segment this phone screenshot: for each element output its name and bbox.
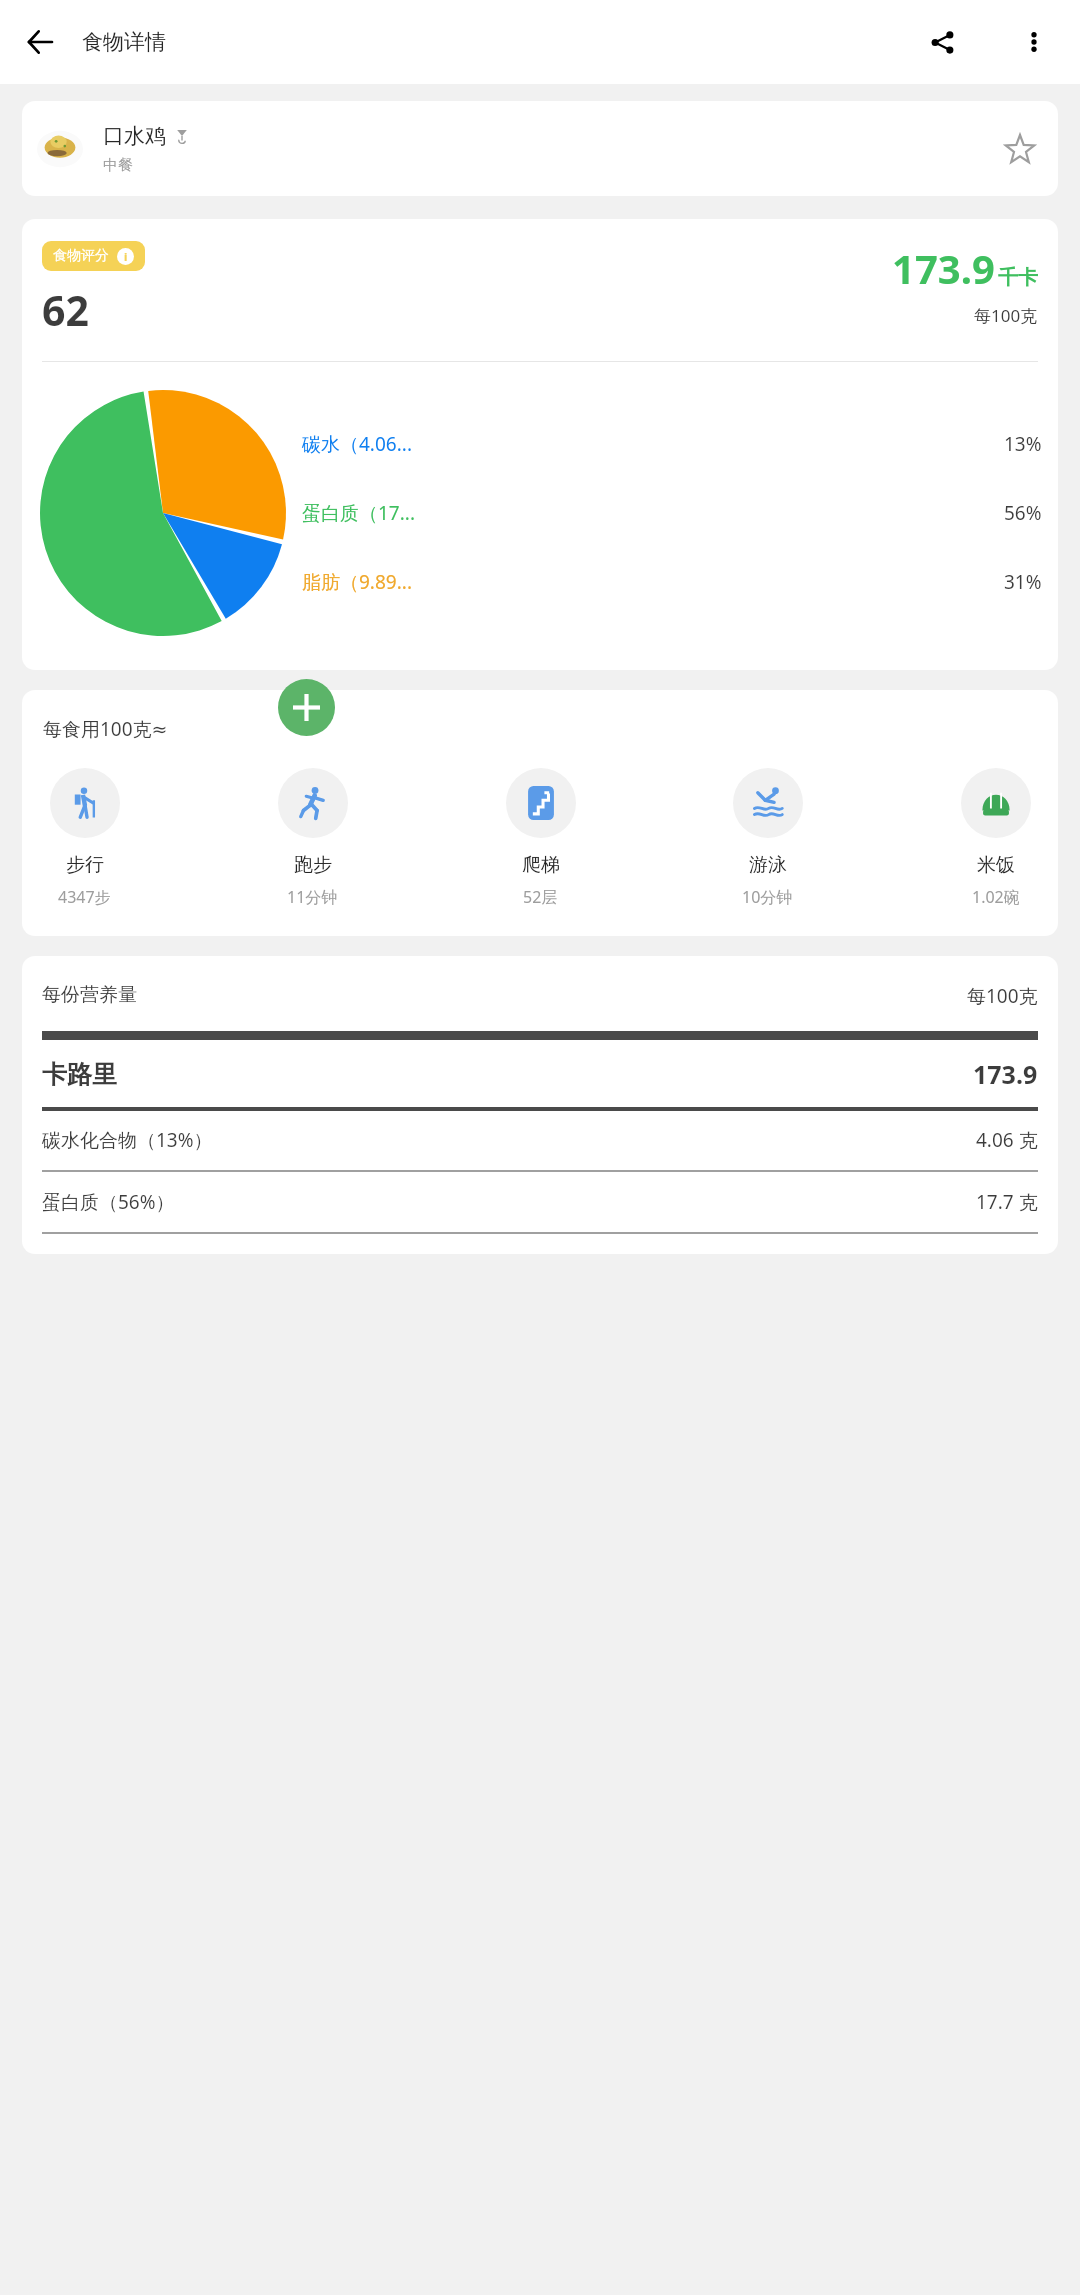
staticText: 食物评分 xyxy=(53,247,109,265)
staticText: 4347步 xyxy=(58,886,111,908)
staticText: 每食用100克≈ xyxy=(43,716,168,742)
button[interactable]: 每份营养量 xyxy=(22,956,1058,1254)
staticText: 步行 xyxy=(66,853,104,877)
staticText: 卡路里 xyxy=(42,1059,973,1090)
button[interactable]: More options xyxy=(1006,14,1062,70)
staticText: 10分钟 xyxy=(742,886,793,908)
button[interactable]: Back xyxy=(12,14,68,70)
staticText: 千卡 xyxy=(998,265,1038,290)
staticText: 口水鸡 xyxy=(103,123,166,149)
staticText: 碳水（4.06... xyxy=(302,431,1004,457)
staticText: 1.02碗 xyxy=(972,886,1020,908)
staticText: 食物详情 xyxy=(82,29,166,55)
button[interactable]: 跑步 xyxy=(264,768,361,908)
staticText: 62 xyxy=(42,282,89,338)
staticText: 31% xyxy=(1004,569,1042,595)
staticText: 蛋白质（17... xyxy=(302,500,1004,526)
staticText: 56% xyxy=(1004,500,1042,526)
button[interactable]: 米饭 xyxy=(947,768,1044,908)
staticText: 4.06 克 xyxy=(976,1127,1038,1153)
staticText: 跑步 xyxy=(294,853,332,877)
staticText: 中餐 xyxy=(103,156,133,175)
staticText: 游泳 xyxy=(749,853,787,877)
staticText: 每100克 xyxy=(974,304,1038,327)
button[interactable]: 口水鸡 xyxy=(22,101,1058,196)
button[interactable]: 游泳 xyxy=(719,768,816,908)
staticText: 蛋白质（56%） xyxy=(42,1189,976,1215)
button[interactable]: 爬梯 xyxy=(492,768,589,908)
button[interactable]: Share xyxy=(914,14,970,70)
staticText: i xyxy=(124,249,128,264)
staticText: 17.7 克 xyxy=(976,1189,1038,1215)
staticText: 每份营养量 xyxy=(42,983,967,1007)
staticText: 碳水化合物（13%） xyxy=(42,1127,976,1153)
staticText: 173.9 xyxy=(892,241,995,295)
staticText: 52层 xyxy=(523,886,558,908)
staticText: 米饭 xyxy=(977,853,1015,877)
staticText: 173.9 xyxy=(973,1057,1038,1091)
staticText: 每100克 xyxy=(967,983,1038,1009)
staticText: 13% xyxy=(1004,431,1042,457)
button[interactable]: Add food xyxy=(278,679,335,736)
button[interactable]: 步行 xyxy=(36,768,133,908)
button[interactable]: Favorite xyxy=(996,125,1044,173)
button[interactable]: 每食用100克≈ xyxy=(22,690,1058,936)
staticText: 11分钟 xyxy=(287,886,338,908)
staticText: 爬梯 xyxy=(522,853,560,877)
staticText: 脂肪（9.89... xyxy=(302,569,1004,595)
button[interactable]: 食物评分 xyxy=(42,241,145,271)
button[interactable]: 食物评分 xyxy=(22,219,1058,670)
